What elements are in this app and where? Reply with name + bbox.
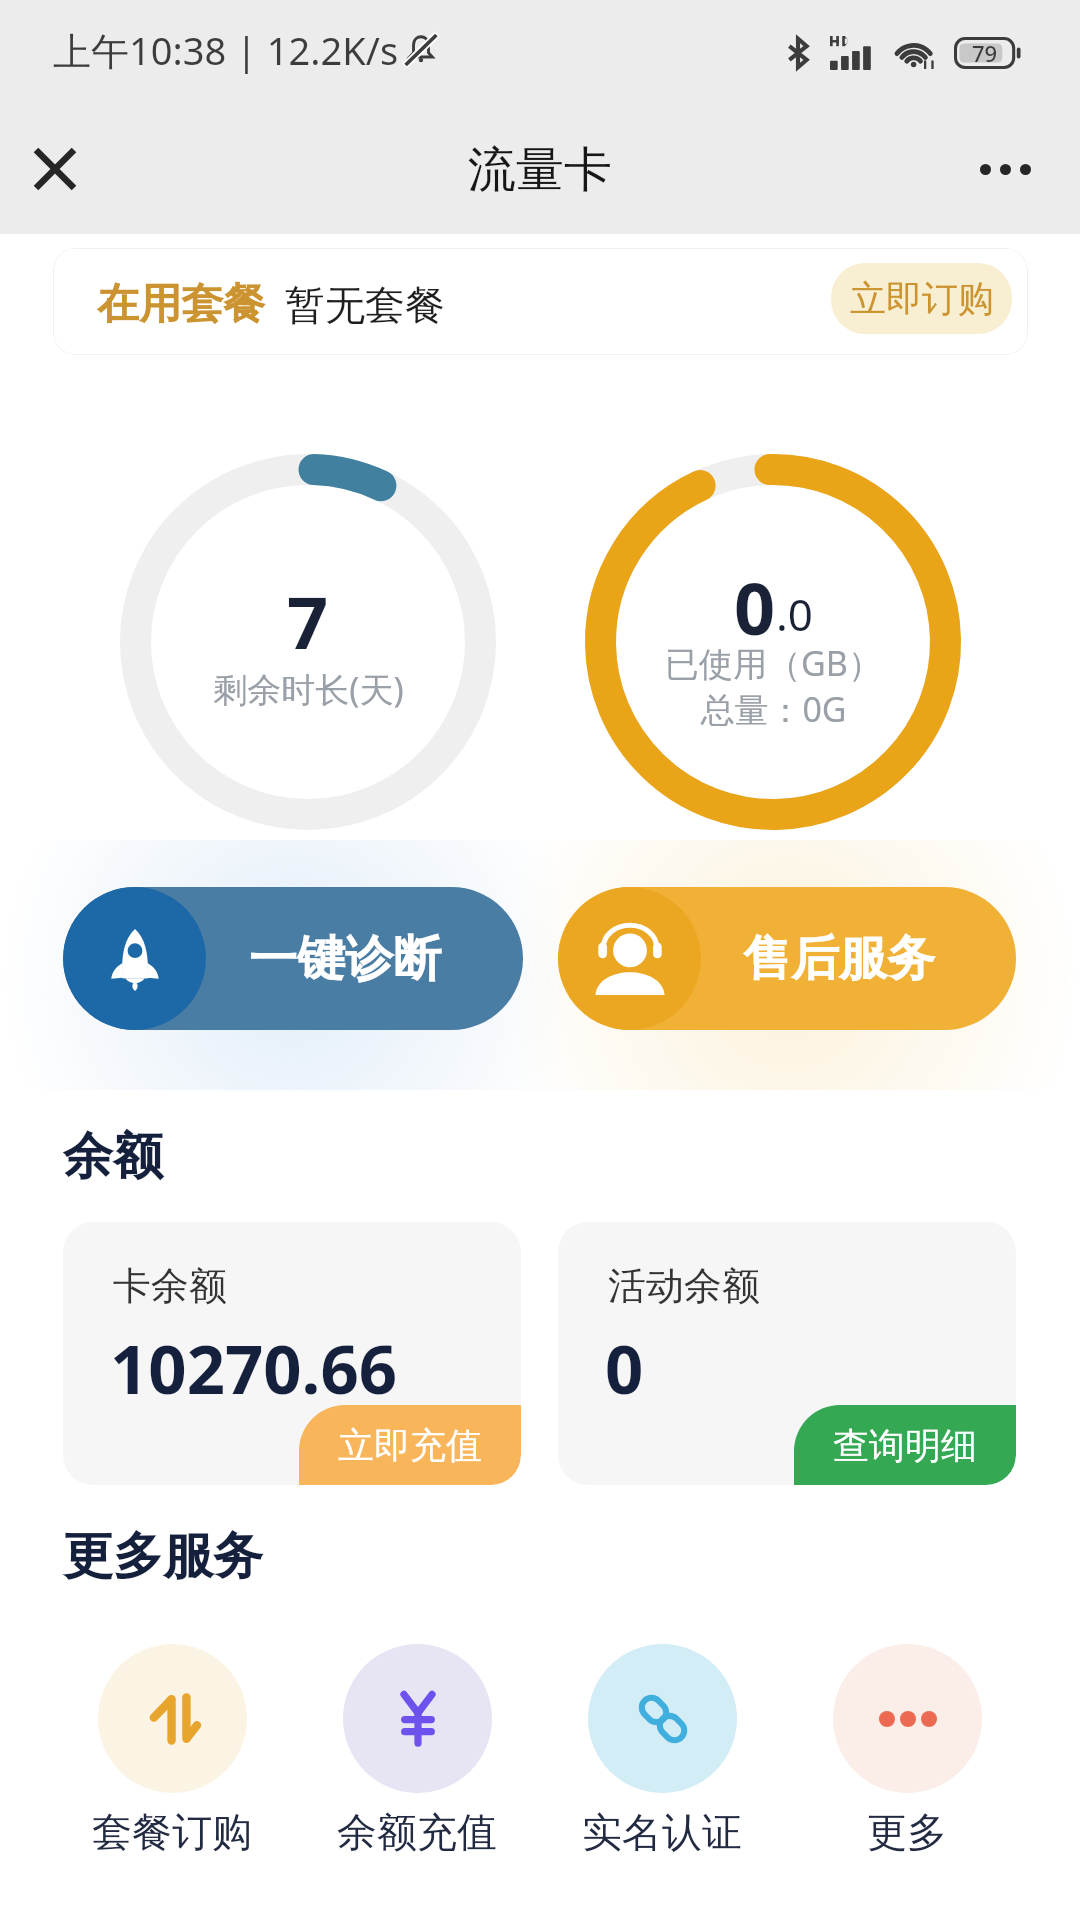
button[interactable]: 售后服务 — [558, 887, 1016, 1030]
staticText: 7 — [287, 572, 329, 670]
staticText: 余额 — [63, 1125, 163, 1188]
button[interactable]: 卡余额 — [63, 1222, 521, 1485]
staticText: 一键诊断 — [249, 929, 441, 989]
staticText: 0 — [734, 558, 776, 656]
staticText: 售后服务 — [743, 929, 935, 989]
staticText: 在用套餐 — [97, 278, 265, 331]
staticText: 剩余时长(天) — [213, 666, 404, 712]
staticText: 更多 — [867, 1807, 947, 1857]
button[interactable]: 套餐订购 — [87, 1644, 257, 1857]
staticText: 实名认证 — [582, 1807, 742, 1857]
staticText: 79 — [972, 38, 998, 68]
button[interactable]: 在用套餐 — [53, 248, 1028, 355]
staticText: 流量卡 — [468, 140, 612, 200]
button[interactable]: 实名认证 — [577, 1644, 747, 1857]
staticText: 活动余额 — [608, 1262, 760, 1310]
staticText: .0 — [776, 584, 813, 644]
button[interactable]: 立即充值 — [299, 1405, 521, 1485]
staticText: 上午10:38 | 12.2K/s — [53, 24, 399, 76]
button[interactable]: 活动余额 — [558, 1222, 1016, 1485]
button[interactable]: 查询明细 — [794, 1405, 1016, 1485]
staticText: 查询明细 — [833, 1423, 977, 1468]
staticText: 总量：0G — [700, 686, 847, 732]
button[interactable]: 立即订购 — [831, 263, 1012, 334]
staticText: 已使用（GB） — [665, 640, 882, 686]
staticText: 立即订购 — [850, 276, 994, 321]
staticText: 暂无套餐 — [285, 280, 445, 330]
button[interactable]: 余额充值 — [332, 1644, 502, 1857]
staticText: 立即充值 — [338, 1423, 482, 1468]
staticText: 10270.66 — [110, 1322, 398, 1413]
staticText: 余额充值 — [337, 1807, 497, 1857]
button[interactable]: 更多选项 — [963, 127, 1047, 211]
staticText: 套餐订购 — [92, 1807, 252, 1857]
staticText: 卡余额 — [113, 1262, 227, 1310]
button[interactable]: 更多 — [822, 1644, 992, 1857]
button[interactable]: 一键诊断 — [63, 887, 523, 1030]
staticText: 更多服务 — [63, 1525, 263, 1588]
button[interactable]: 关闭 — [13, 127, 97, 211]
staticText: 0 — [605, 1322, 644, 1413]
